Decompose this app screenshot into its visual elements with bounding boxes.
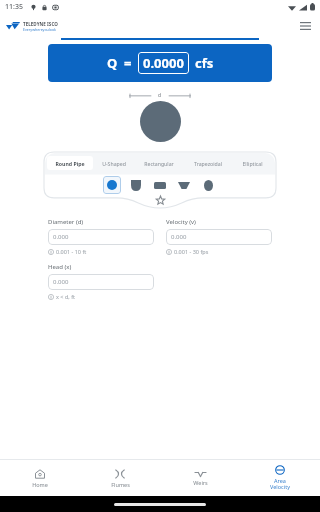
- staticText: Round Pipe: [55, 160, 85, 167]
- staticText: Q =: [107, 54, 132, 72]
- button[interactable]: Trapezoidal channel: [175, 176, 193, 194]
- staticText: Diameter (d): [48, 218, 84, 226]
- button[interactable]: Menu: [296, 17, 314, 35]
- staticText: d: [158, 92, 162, 99]
- staticText: Head (x): [48, 263, 72, 271]
- staticText: Flumes: [111, 481, 130, 488]
- staticText: 0.0000: [143, 54, 184, 72]
- button[interactable]: Weirs: [160, 460, 240, 496]
- button[interactable]: Round Pipe: [47, 156, 93, 170]
- staticText: 0.000: [171, 233, 187, 241]
- staticText: Rectangular: [144, 160, 174, 167]
- staticText: 0.001 - 30 fps: [174, 248, 209, 255]
- button[interactable]: 0.000: [166, 229, 272, 245]
- button[interactable]: Q =: [48, 44, 272, 82]
- button[interactable]: Rectangular: [134, 156, 183, 170]
- staticText: Everywhereyoulook: [23, 27, 57, 32]
- button[interactable]: Round pipe: [103, 176, 121, 194]
- button[interactable]: 0.000: [48, 229, 154, 245]
- staticText: Elliptical: [242, 160, 263, 167]
- button[interactable]: U-shaped channel: [127, 176, 145, 194]
- button[interactable]: Elliptical channel: [199, 176, 217, 194]
- staticText: 11:35: [5, 2, 23, 12]
- staticText: 0.000: [53, 233, 69, 241]
- staticText: Weirs: [193, 479, 208, 486]
- staticText: Trapezoidal: [194, 160, 222, 167]
- staticText: Home: [32, 481, 48, 488]
- staticText: cfs: [195, 54, 214, 72]
- button[interactable]: Favorite: [152, 192, 168, 208]
- staticText: TELEDYNE ISCO: [23, 21, 58, 27]
- staticText: x < d, ft: [56, 293, 76, 300]
- staticText: U-Shaped: [102, 160, 126, 167]
- staticText: 0.000: [53, 278, 69, 286]
- button[interactable]: U-Shaped: [93, 156, 134, 170]
- button[interactable]: Area Velocity: [240, 460, 320, 496]
- staticText: Area Velocity: [270, 477, 290, 491]
- button[interactable]: 0.000: [48, 274, 154, 290]
- button[interactable]: Home: [0, 460, 80, 496]
- button[interactable]: Trapezoidal: [183, 156, 232, 170]
- staticText: 0.001 - 10 ft: [56, 248, 87, 255]
- button[interactable]: Rectangular channel: [151, 176, 169, 194]
- button[interactable]: Elliptical: [232, 156, 273, 170]
- button[interactable]: Flumes: [80, 460, 160, 496]
- staticText: Velocity (v): [166, 218, 196, 226]
